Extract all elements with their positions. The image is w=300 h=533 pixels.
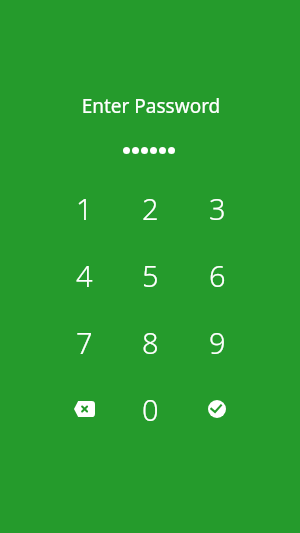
button[interactable]: 9 bbox=[184, 309, 251, 376]
button[interactable]: 2 bbox=[117, 175, 184, 242]
button[interactable]: 8 bbox=[117, 309, 184, 376]
button[interactable]: 4 bbox=[51, 242, 117, 309]
staticText: 2 bbox=[142, 189, 159, 228]
button[interactable]: 1 bbox=[51, 175, 117, 242]
staticText: 9 bbox=[209, 323, 226, 362]
staticText: 8 bbox=[142, 323, 159, 362]
button[interactable]: Confirm bbox=[184, 376, 251, 443]
button[interactable]: 0 bbox=[117, 376, 184, 443]
staticText: 3 bbox=[209, 189, 226, 228]
button[interactable]: 5 bbox=[117, 242, 184, 309]
button[interactable]: 3 bbox=[184, 175, 251, 242]
staticText: 6 bbox=[209, 256, 226, 295]
button[interactable]: 7 bbox=[51, 309, 117, 376]
staticText: 1 bbox=[76, 189, 93, 228]
staticText: 4 bbox=[76, 256, 93, 295]
staticText: Enter Password bbox=[1, 93, 300, 119]
button[interactable]: Backspace bbox=[51, 376, 117, 443]
button[interactable]: 6 bbox=[184, 242, 251, 309]
staticText: 7 bbox=[76, 323, 93, 362]
staticText: 5 bbox=[142, 256, 159, 295]
staticText: 0 bbox=[142, 390, 159, 429]
